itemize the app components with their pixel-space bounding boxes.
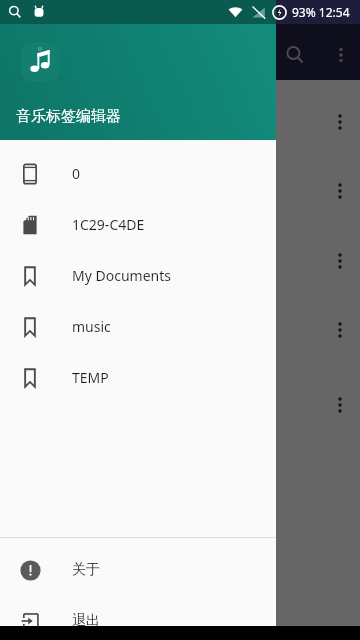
button[interactable]: More options: [326, 391, 354, 419]
button[interactable]: TEMP: [0, 352, 276, 403]
button[interactable]: More options: [326, 108, 354, 136]
staticText: My Documents: [72, 266, 171, 285]
button[interactable]: More options: [324, 38, 358, 72]
button[interactable]: More options: [326, 316, 354, 344]
button[interactable]: 退出: [0, 595, 276, 640]
button[interactable]: 关于: [0, 544, 276, 595]
button[interactable]: More options: [326, 177, 354, 205]
staticText: TEMP: [72, 368, 109, 387]
button[interactable]: More options: [326, 247, 354, 275]
staticText: 退出: [72, 612, 100, 630]
button[interactable]: 0: [0, 148, 276, 199]
staticText: 0: [72, 164, 81, 183]
staticText: 1C29-C4DE: [72, 215, 145, 234]
button[interactable]: 1C29-C4DE: [0, 199, 276, 250]
button[interactable]: My Documents: [0, 250, 276, 301]
staticText: music: [72, 317, 111, 336]
button[interactable]: Search: [278, 38, 312, 72]
staticText: 93% 12:54: [292, 4, 350, 20]
staticText: 关于: [72, 561, 100, 579]
button[interactable]: music: [0, 301, 276, 352]
staticText: 音乐标签编辑器: [16, 107, 121, 126]
